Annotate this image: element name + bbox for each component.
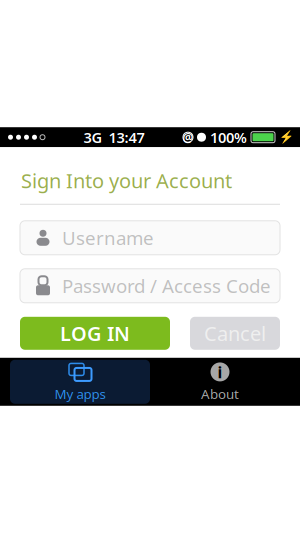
- staticText: About: [201, 385, 239, 403]
- button[interactable]: LOG IN: [20, 317, 170, 350]
- staticText: Sign Into your Account: [21, 167, 232, 194]
- staticText: LOG IN: [60, 320, 130, 347]
- staticText: 13:47: [108, 127, 144, 147]
- staticText: 100%: [210, 127, 247, 147]
- staticText: My apps: [54, 385, 105, 403]
- staticText: Password / Access Code: [62, 273, 271, 298]
- staticText: @: [182, 129, 193, 145]
- button[interactable]: Cancel: [190, 317, 280, 350]
- staticText: 3G: [83, 127, 102, 147]
- staticText: ⚡: [279, 130, 294, 144]
- button[interactable]: i: [150, 360, 290, 404]
- staticText: Cancel: [204, 320, 266, 347]
- staticText: Username: [62, 225, 154, 250]
- staticText: i: [217, 361, 222, 382]
- button[interactable]: My apps: [10, 360, 150, 404]
